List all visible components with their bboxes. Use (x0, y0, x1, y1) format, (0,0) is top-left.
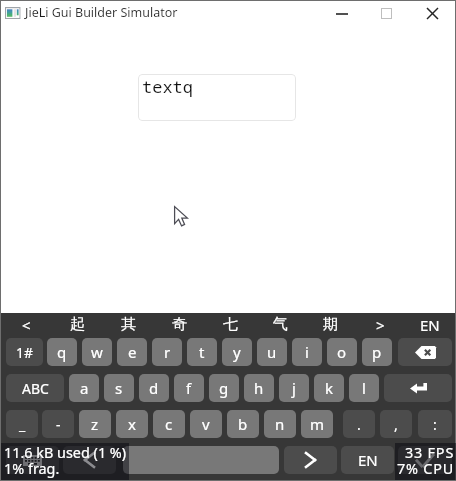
staticText: a (80, 378, 89, 398)
button[interactable]: , (380, 410, 412, 438)
staticText: g (219, 378, 229, 398)
button[interactable]: enter (384, 374, 452, 402)
staticText: o (337, 342, 347, 362)
staticText: d (149, 378, 159, 398)
button[interactable]: : (418, 410, 452, 438)
staticText: , (394, 415, 398, 434)
button[interactable]: Maximize (364, 1, 410, 32)
staticText: 11.6 kB used (1 %) (4, 443, 127, 463)
staticText: _ (19, 415, 26, 434)
button[interactable]: < (1, 313, 52, 338)
staticText: 1% frag. (4, 459, 60, 479)
button[interactable]: n (264, 410, 296, 438)
button[interactable]: m (301, 410, 333, 438)
button[interactable]: 1# (6, 338, 43, 366)
button[interactable]: d (139, 374, 169, 402)
button[interactable]: EN (405, 313, 455, 338)
staticText: f (186, 378, 192, 398)
button[interactable]: textq (138, 74, 296, 121)
button[interactable]: kbd (6, 446, 59, 474)
button[interactable]: - (42, 410, 74, 438)
staticText: x (128, 414, 136, 434)
staticText: textq (142, 75, 193, 98)
staticText: p (372, 342, 382, 362)
staticText: : (433, 415, 437, 434)
button[interactable]: w (82, 338, 112, 366)
staticText: 七 (223, 315, 238, 334)
staticText: q (57, 342, 67, 362)
button[interactable]: 气 (255, 313, 305, 338)
staticText: e (128, 342, 137, 362)
staticText: < (22, 315, 31, 335)
button[interactable]: gt (284, 446, 337, 474)
staticText: - (56, 415, 61, 434)
button[interactable]: l (349, 374, 379, 402)
staticText: y (233, 342, 241, 362)
button[interactable]: a (69, 374, 99, 402)
staticText: n (275, 414, 285, 434)
staticText: b (238, 414, 248, 434)
staticText: v (202, 414, 210, 434)
button[interactable]: f (174, 374, 204, 402)
staticText: u (267, 342, 277, 362)
button[interactable]: q (47, 338, 77, 366)
button[interactable]: j (279, 374, 309, 402)
staticText: 33 FPS (405, 443, 455, 463)
button[interactable] (123, 446, 279, 474)
button[interactable]: u (257, 338, 287, 366)
button[interactable]: _ (6, 410, 38, 438)
button[interactable]: k (314, 374, 344, 402)
button[interactable]: r (152, 338, 182, 366)
staticText: . (357, 415, 361, 434)
button[interactable]: v (190, 410, 222, 438)
staticText: r (164, 342, 171, 362)
button[interactable]: backspace (398, 338, 452, 366)
button[interactable]: 奇 (154, 313, 205, 338)
button[interactable]: t (187, 338, 217, 366)
button[interactable]: Close (410, 1, 456, 32)
staticText: JieLi Gui Builder Simulator (25, 4, 178, 21)
staticText: w (91, 342, 103, 362)
staticText: k (325, 378, 334, 398)
staticText: 1# (16, 343, 34, 362)
button[interactable]: e (117, 338, 147, 366)
staticText: > (376, 315, 385, 335)
staticText: EN (420, 315, 440, 335)
button[interactable]: g (209, 374, 239, 402)
staticText: l (362, 378, 366, 398)
button[interactable]: > (355, 313, 405, 338)
staticText: s (115, 378, 123, 398)
button[interactable]: lt (63, 446, 116, 474)
staticText: 期 (323, 315, 338, 334)
staticText: h (254, 378, 264, 398)
staticText: 7% CPU (397, 459, 455, 479)
button[interactable]: 起 (52, 313, 103, 338)
button[interactable]: i (292, 338, 322, 366)
staticText: j (292, 378, 296, 398)
button[interactable]: x (116, 410, 148, 438)
staticText: c (165, 414, 173, 434)
button[interactable]: ABC (6, 374, 64, 402)
button[interactable]: h (244, 374, 274, 402)
button[interactable]: check (398, 446, 452, 474)
staticText: 起 (70, 315, 85, 334)
button[interactable]: c (153, 410, 185, 438)
button[interactable]: . (343, 410, 375, 438)
staticText: z (91, 414, 99, 434)
button[interactable]: o (327, 338, 357, 366)
button[interactable]: 七 (205, 313, 255, 338)
button[interactable]: s (104, 374, 134, 402)
staticText: m (310, 414, 325, 434)
button[interactable]: 其 (103, 313, 154, 338)
button[interactable]: z (79, 410, 111, 438)
staticText: ABC (22, 379, 49, 398)
button[interactable]: 期 (305, 313, 355, 338)
staticText: 其 (121, 315, 136, 334)
button[interactable]: EN (341, 446, 394, 474)
staticText: 奇 (172, 315, 187, 334)
button[interactable]: b (227, 410, 259, 438)
button[interactable]: p (362, 338, 392, 366)
button[interactable]: Minimize (319, 1, 365, 32)
button[interactable]: y (222, 338, 252, 366)
staticText: t (199, 342, 205, 362)
